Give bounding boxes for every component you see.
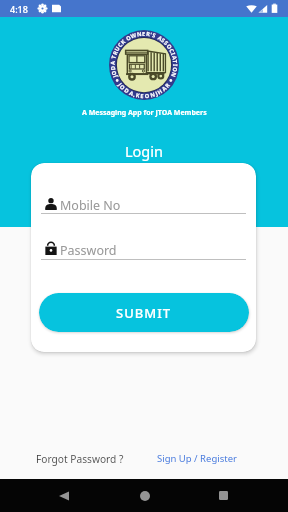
staticText: SUBMIT [116,304,172,322]
staticText: Mobile No [60,197,121,214]
button[interactable] [41,190,246,218]
staticText: Sign Up / Register [157,452,237,465]
button[interactable]: Back [43,479,84,512]
staticText: Password [60,242,117,259]
staticText: 4:18 [10,3,28,15]
staticText: Forgot Password ? [36,452,124,466]
button[interactable]: Sign Up / Register [157,452,237,465]
staticText: A Messaging App for JTOA Members [82,108,207,118]
button[interactable]: SUBMIT [39,293,249,332]
button[interactable]: Forgot Password ? [36,452,124,466]
button[interactable] [41,235,246,263]
button[interactable]: Recent apps [203,479,244,512]
button[interactable]: Home [124,479,165,512]
staticText: Login [125,141,163,161]
